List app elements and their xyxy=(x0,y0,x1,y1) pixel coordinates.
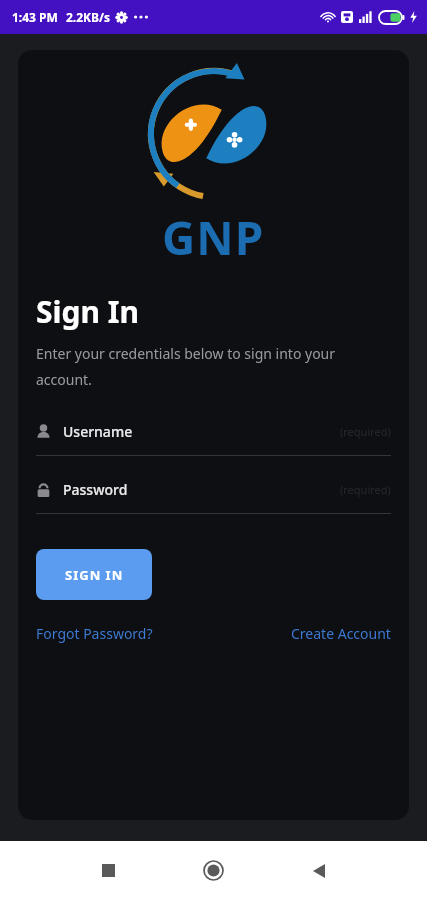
staticText: 2.2KB/s xyxy=(66,9,111,25)
button[interactable]: Home xyxy=(161,841,266,900)
staticText: Create Account xyxy=(291,624,391,643)
staticText: Forgot Password? xyxy=(36,624,153,643)
button[interactable]: Recents xyxy=(56,841,161,900)
button[interactable]: Username xyxy=(36,422,391,456)
staticText: Password xyxy=(63,480,128,499)
staticText: 1:43 PM xyxy=(12,9,58,25)
staticText: (required) xyxy=(340,482,391,497)
staticText: Username xyxy=(63,422,133,441)
button[interactable]: Forgot Password? xyxy=(36,620,153,647)
staticText: Sign In xyxy=(36,291,139,332)
button[interactable]: Back xyxy=(266,841,371,900)
button[interactable]: Create Account xyxy=(291,620,391,647)
staticText: GNP xyxy=(162,206,265,269)
button[interactable]: SIGN IN xyxy=(36,549,152,600)
staticText: (required) xyxy=(340,424,391,439)
button[interactable]: Password xyxy=(36,480,391,514)
staticText: SIGN IN xyxy=(65,566,124,584)
staticText: Enter your credentials below to sign int… xyxy=(36,344,391,390)
